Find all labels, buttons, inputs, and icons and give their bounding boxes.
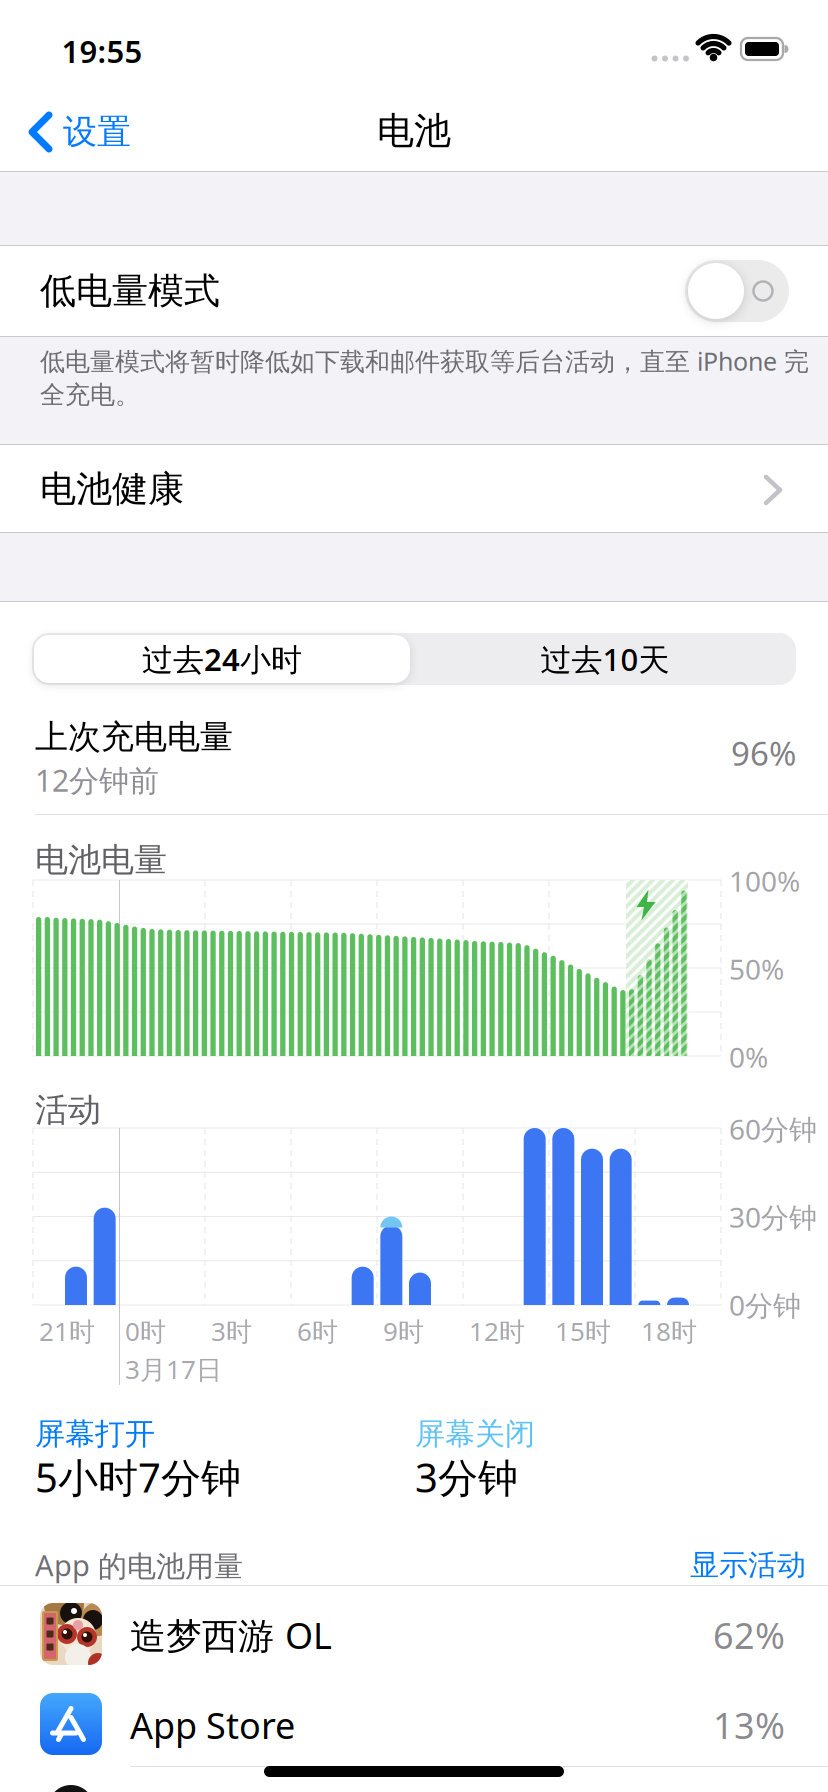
staticText: 3时 <box>211 1313 252 1349</box>
staticText: 60分钟 <box>729 1110 817 1148</box>
staticText: 0分钟 <box>729 1286 801 1324</box>
staticText: 21时 <box>39 1313 95 1349</box>
staticText: 50% <box>729 950 784 988</box>
staticText: 过去10天 <box>540 638 669 680</box>
staticText: 3月17日 <box>125 1351 222 1387</box>
staticText: 15时 <box>555 1313 611 1349</box>
staticText: 6时 <box>297 1313 338 1349</box>
button[interactable]: 过去10天 <box>415 633 795 685</box>
staticText: 18时 <box>641 1313 697 1349</box>
staticText: 电池健康 <box>40 466 184 512</box>
staticText: 0时 <box>125 1313 166 1349</box>
staticText: App 的电池用量 <box>35 1545 243 1585</box>
staticText: 3分钟 <box>415 1450 518 1504</box>
button[interactable]: 低电量模式 <box>685 260 789 322</box>
staticText: 电池 <box>377 108 451 154</box>
staticText: 活动 <box>35 1089 101 1131</box>
staticText: 造梦西游 OL <box>130 1610 332 1659</box>
staticText: 上次充电电量 <box>35 716 233 758</box>
staticText: 5小时7分钟 <box>35 1450 241 1504</box>
staticText: 100% <box>729 862 800 900</box>
button[interactable]: App Store <box>0 1676 828 1766</box>
button[interactable]: 设置 <box>29 111 131 153</box>
staticText: 屏幕打开 <box>35 1415 155 1453</box>
staticText: 低电量模式 <box>40 268 220 314</box>
staticText: 0% <box>729 1038 768 1076</box>
staticText: 19:55 <box>61 30 142 72</box>
staticText: 9时 <box>383 1313 424 1349</box>
staticText: 低电量模式将暂时降低如下载和邮件获取等后台活动，直至 iPhone 完 <box>40 344 809 378</box>
staticText: App Store <box>130 1700 295 1749</box>
button[interactable]: 显示活动 <box>690 1547 806 1583</box>
staticText: 30分钟 <box>729 1198 817 1236</box>
button[interactable]: 电池健康 <box>0 446 828 532</box>
staticText: 12时 <box>469 1313 525 1349</box>
staticText: 显示活动 <box>690 1547 806 1583</box>
staticText: 全充电。 <box>40 379 140 411</box>
staticText: 12分钟前 <box>35 760 159 800</box>
button[interactable]: 造梦西游 OL <box>0 1586 828 1676</box>
staticText: 电池电量 <box>35 839 167 881</box>
button[interactable]: 过去24小时 <box>32 633 412 685</box>
staticText: 屏幕关闭 <box>415 1415 535 1453</box>
staticText: 96% <box>731 730 796 775</box>
staticText: 过去24小时 <box>142 638 302 680</box>
staticText: 设置 <box>63 111 131 153</box>
staticText: 62% <box>713 1610 785 1659</box>
staticText: 13% <box>713 1700 785 1749</box>
